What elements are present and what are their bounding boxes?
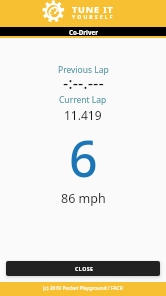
staticText: CLOSE (75, 265, 94, 272)
staticText: 6 (69, 124, 98, 192)
staticText: Co-Driver (69, 28, 98, 36)
staticText: Previous Lap (58, 64, 109, 76)
staticText: TUNE IT (72, 3, 114, 15)
staticText: Current Lap (59, 94, 107, 106)
button[interactable]: CLOSE (6, 261, 160, 276)
staticText: 11.419 (64, 107, 102, 123)
staticText: 86 mph (61, 190, 106, 207)
staticText: -:--.--- (63, 71, 104, 93)
staticText: YOURSELF (72, 14, 115, 21)
staticText: (c) 2019 Pocket Playground / FACR (43, 285, 123, 292)
